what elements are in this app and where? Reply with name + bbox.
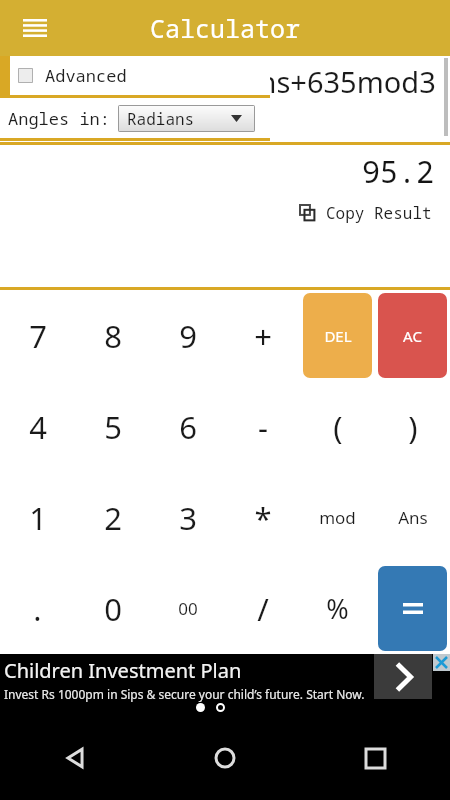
staticText: 9 <box>179 315 197 357</box>
button[interactable]: 8 <box>75 290 150 381</box>
button[interactable]: 6 <box>150 381 225 472</box>
staticText: . <box>33 588 42 630</box>
button[interactable]: 1 <box>0 472 75 563</box>
button[interactable]: ) <box>375 381 450 472</box>
button[interactable]: 00 <box>150 563 225 654</box>
button[interactable]: 3 <box>150 472 225 563</box>
staticText: + <box>254 315 272 357</box>
staticText: % <box>326 590 349 627</box>
staticText: ( <box>333 406 343 448</box>
button[interactable]: 4 <box>0 381 75 472</box>
button[interactable]: Open ad <box>374 654 432 699</box>
button[interactable]: + <box>225 290 300 381</box>
staticText: Children Investment Plan <box>4 657 242 684</box>
staticText: 8 <box>104 315 122 357</box>
staticText: Invest Rs 1000pm in Sips & secure your c… <box>4 686 365 702</box>
staticText: Calculator <box>150 11 301 45</box>
staticText: - <box>258 406 268 448</box>
staticText: 6 <box>179 406 197 448</box>
staticText: Ans+635mod3 <box>240 62 436 101</box>
button[interactable]: / <box>225 563 300 654</box>
staticText: AC <box>403 326 422 346</box>
staticText: Radians <box>127 108 195 130</box>
button[interactable]: . <box>0 563 75 654</box>
button[interactable]: Open navigation menu <box>18 11 52 45</box>
staticText: 3 <box>179 497 197 539</box>
staticText: DEL <box>324 326 352 346</box>
button[interactable]: Copy Result <box>298 200 434 226</box>
staticText: 2 <box>104 497 122 539</box>
button[interactable]: 5 <box>75 381 150 472</box>
button[interactable]: AC <box>378 293 447 378</box>
button[interactable]: Ans <box>375 472 450 563</box>
button[interactable]: Radians <box>118 105 255 132</box>
button[interactable]: 7 <box>0 290 75 381</box>
button[interactable]: Back <box>0 716 150 800</box>
staticText: Angles in: <box>8 107 110 130</box>
button[interactable]: Close ad <box>433 654 450 671</box>
staticText: 00 <box>178 597 198 620</box>
button[interactable] <box>378 566 447 651</box>
button[interactable]: 9 <box>150 290 225 381</box>
staticText: 5 <box>104 406 122 448</box>
staticText: Advanced <box>45 64 127 87</box>
staticText: / <box>257 588 269 630</box>
button[interactable]: mod <box>300 472 375 563</box>
button[interactable]: 2 <box>75 472 150 563</box>
button[interactable]: * <box>225 472 300 563</box>
button[interactable]: % <box>300 563 375 654</box>
staticText: * <box>254 497 272 539</box>
button[interactable]: - <box>225 381 300 472</box>
staticText: ) <box>408 406 418 448</box>
staticText: mod <box>319 506 356 529</box>
button[interactable]: 0 <box>75 563 150 654</box>
staticText: 1 <box>29 497 47 539</box>
staticText: Ans <box>398 506 428 529</box>
button[interactable]: Recent apps <box>300 716 450 800</box>
button[interactable]: DEL <box>303 293 372 378</box>
button[interactable]: Advanced <box>0 56 270 95</box>
button[interactable]: ( <box>300 381 375 472</box>
staticText: 7 <box>29 315 47 357</box>
button[interactable]: Home <box>150 716 300 800</box>
staticText: 4 <box>29 406 47 448</box>
staticText: 95.2 <box>362 151 434 192</box>
staticText: 0 <box>104 588 122 630</box>
staticText: Copy Result <box>326 202 432 224</box>
